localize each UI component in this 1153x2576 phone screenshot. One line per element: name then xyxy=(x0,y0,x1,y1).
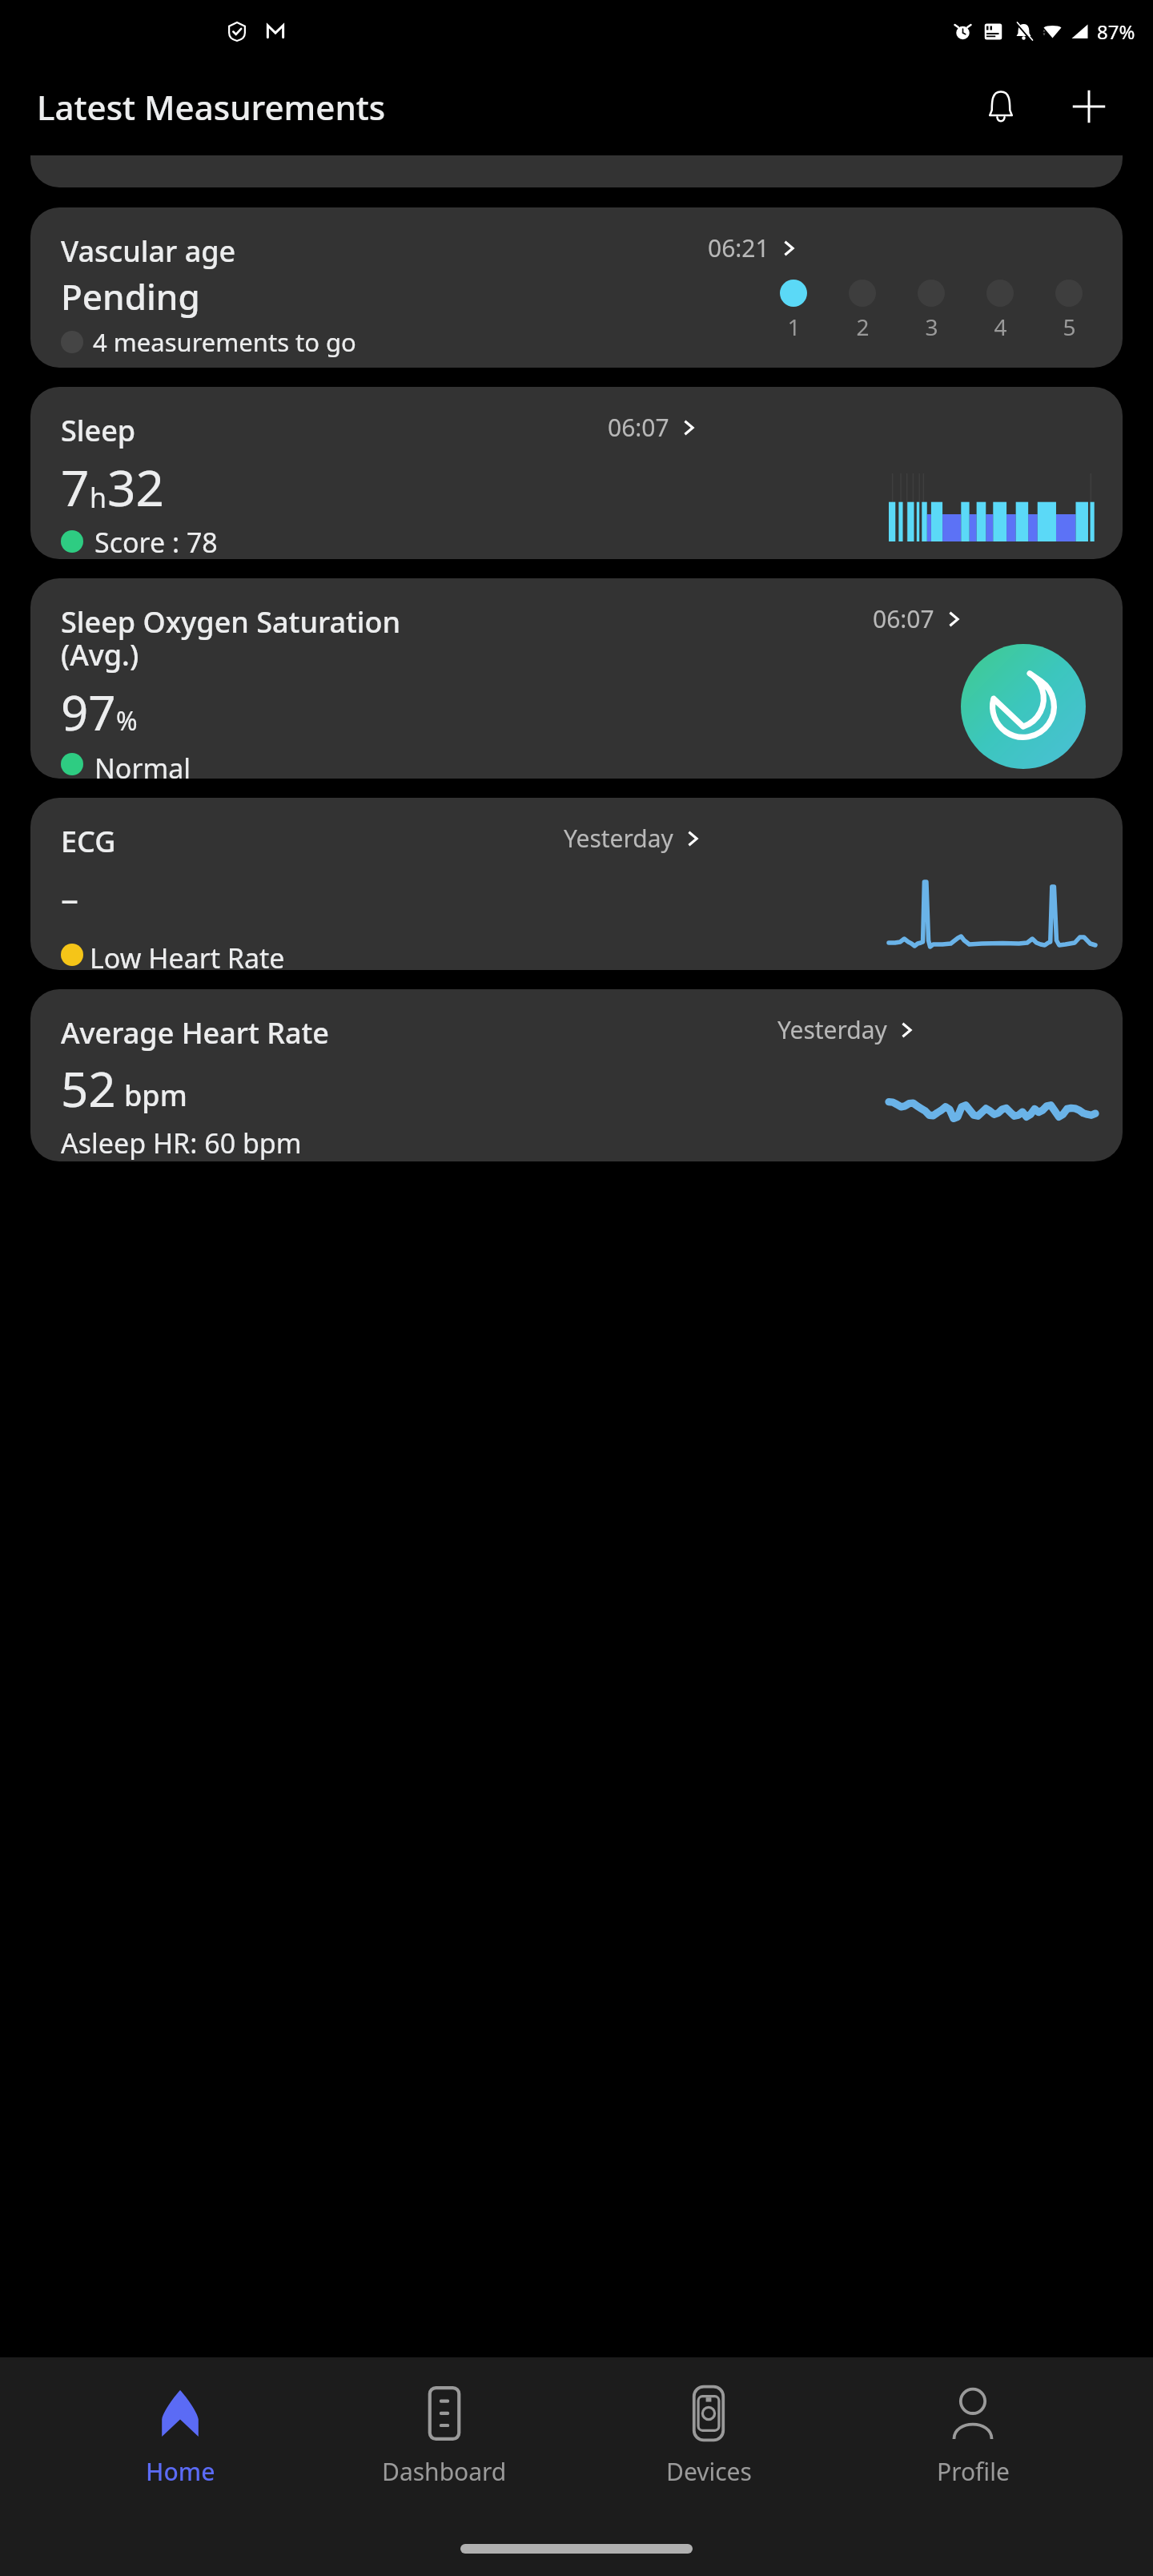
staticText: bpm xyxy=(124,1076,187,1115)
staticText: Average Heart Rate xyxy=(61,1013,330,1053)
staticText: 06:07 xyxy=(608,411,669,444)
staticText: 32 xyxy=(107,453,164,521)
staticText: 2 xyxy=(856,312,870,342)
button[interactable]: Profile xyxy=(889,2375,1057,2496)
staticText: Score : 78 xyxy=(94,524,218,559)
staticText: Normal xyxy=(94,750,191,779)
button[interactable] xyxy=(30,155,1123,187)
staticText: Vascular age xyxy=(61,231,236,271)
staticText: Low Heart Rate xyxy=(90,940,285,970)
staticText: Sleep xyxy=(61,411,136,450)
staticText: 4 xyxy=(994,312,1007,342)
staticText: Yesterday xyxy=(564,822,673,855)
staticText: 5 xyxy=(1063,312,1076,342)
staticText: Sleep Oxygen Saturation (Avg.) xyxy=(61,602,401,674)
staticText: Dashboard xyxy=(382,2455,507,2488)
staticText: Home xyxy=(146,2455,215,2488)
staticText: % xyxy=(116,703,138,739)
staticText: Latest Measurements xyxy=(37,84,386,130)
button[interactable]: Notifications xyxy=(961,66,1041,147)
staticText: 52 xyxy=(61,1056,116,1121)
button[interactable]: Vascular age xyxy=(30,207,1123,368)
button[interactable]: Add measurement xyxy=(1049,66,1129,147)
staticText: Asleep HR: 60 bpm xyxy=(61,1125,302,1161)
staticText: ECG xyxy=(61,822,116,861)
staticText: 3 xyxy=(925,312,938,342)
staticText: – xyxy=(61,874,78,922)
staticText: Devices xyxy=(666,2455,752,2488)
button[interactable]: Dashboard xyxy=(360,2375,528,2496)
staticText: 87% xyxy=(1097,18,1135,45)
button[interactable]: Devices xyxy=(625,2375,793,2496)
staticText: Pending xyxy=(61,272,200,320)
staticText: Profile xyxy=(937,2455,1010,2488)
button[interactable]: Sleep Oxygen Saturation (Avg.) xyxy=(30,578,1123,779)
staticText: 97 xyxy=(61,679,116,745)
button[interactable]: Sleep xyxy=(30,387,1123,559)
staticText: h xyxy=(90,479,107,516)
staticText: 7 xyxy=(61,453,90,521)
staticText: Yesterday xyxy=(777,1013,887,1046)
staticText: 06:07 xyxy=(873,602,934,635)
button[interactable]: Home xyxy=(96,2375,264,2496)
staticText: 4 measurements to go xyxy=(93,325,356,359)
button[interactable]: ECG xyxy=(30,798,1123,970)
staticText: 06:21 xyxy=(708,231,769,264)
staticText: 1 xyxy=(787,312,801,342)
button[interactable]: Average Heart Rate xyxy=(30,989,1123,1161)
